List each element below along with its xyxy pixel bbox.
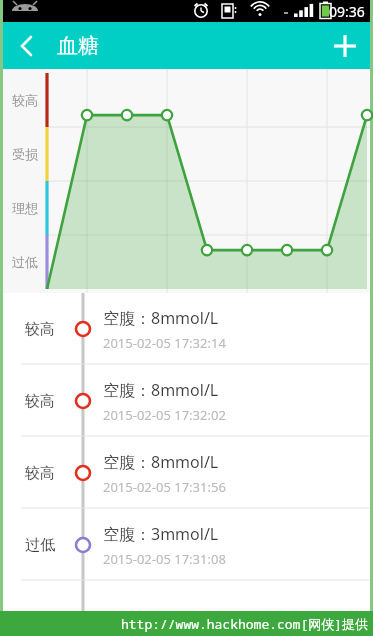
staticText: 较高: [25, 464, 55, 483]
staticText: 过低: [25, 536, 55, 555]
staticText: 2015-02-05 17:32:02: [103, 406, 226, 424]
staticText: 较高: [25, 392, 55, 411]
staticText: 血糖: [57, 33, 99, 59]
staticText: http://www.hackhome.com[网侠]提供: [121, 615, 369, 633]
staticText: 空腹：8mmol/L: [103, 307, 219, 329]
staticText: 空腹：8mmol/L: [103, 451, 219, 473]
staticText: 09:36: [329, 2, 365, 21]
button[interactable]: 过低: [3, 509, 370, 581]
staticText: 受损: [12, 146, 38, 162]
button[interactable]: 较高: [3, 437, 370, 509]
button[interactable]: Back: [3, 23, 49, 69]
button[interactable]: 较高: [3, 365, 370, 437]
staticText: 较高: [12, 92, 38, 108]
staticText: 空腹：3mmol/L: [103, 523, 219, 545]
staticText: 较高: [25, 320, 55, 339]
staticText: 空腹：8mmol/L: [103, 379, 219, 401]
staticText: 理想: [12, 200, 38, 216]
staticText: 过低: [12, 254, 38, 270]
staticText: 2015-02-05 17:31:08: [103, 550, 226, 568]
button[interactable]: 较高: [3, 293, 370, 365]
staticText: 2015-02-05 17:31:56: [103, 478, 226, 496]
staticText: 2015-02-05 17:32:14: [103, 334, 226, 352]
button[interactable]: Add: [320, 22, 370, 69]
